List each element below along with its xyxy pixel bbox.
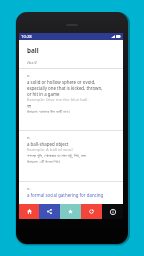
button[interactable]: Refresh (81, 204, 102, 219)
staticText: a ball-shaped object (27, 141, 69, 147)
staticText: a formal social gathering for dancing (27, 192, 104, 198)
button[interactable]: Share (39, 204, 60, 219)
button[interactable]: Home (19, 204, 39, 219)
staticText: উদাহরণ: এটি উলের পিণ্ড। (27, 159, 60, 165)
staticText: Example: Give me the blue ball. (27, 97, 89, 103)
staticText: Example: A ball of wool (27, 147, 73, 153)
staticText: উদাহরণ: আমাকে নীল বলটি দাও। (27, 109, 70, 115)
staticText: 10:28 (21, 34, 32, 40)
button[interactable]: Info (102, 204, 123, 219)
staticText: a solid or hollow sphere or ovoid, (27, 79, 96, 85)
staticText: n. (27, 73, 31, 78)
staticText: পশমের গুলি, গোলাকার বা গোল বস্তু, পিণ্ড,… (27, 153, 86, 159)
staticText: /bɔːl/ (27, 60, 38, 66)
button[interactable]: Favorite (60, 204, 81, 219)
staticText: বল (27, 104, 31, 108)
staticText: n. (27, 186, 31, 191)
staticText: or hit in a game (27, 91, 60, 97)
staticText: ball (27, 46, 39, 55)
staticText: especially one that is kicked, thrown, (27, 85, 103, 91)
staticText: n. (27, 135, 31, 140)
